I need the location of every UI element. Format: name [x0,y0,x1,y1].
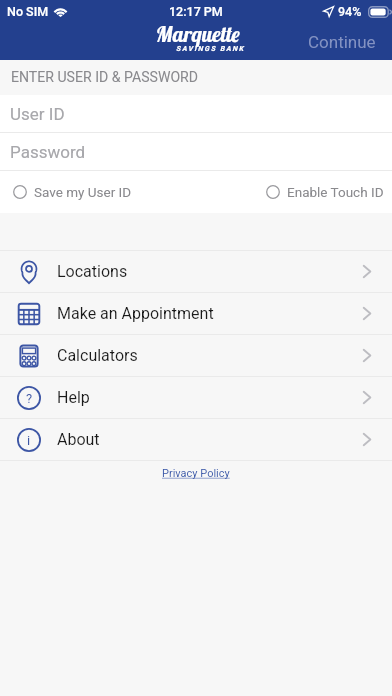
staticText: Make an Appointment [57,304,214,323]
staticText: Privacy Policy [162,467,230,480]
button[interactable]: ? [0,377,392,418]
staticText: 94% [338,4,362,19]
staticText: ENTER USER ID & PASSWORD [11,69,199,86]
button[interactable]: Continue [308,32,392,60]
staticText: i [27,433,31,448]
staticText: Marquette [156,21,240,47]
button[interactable]: User ID [0,95,392,132]
staticText: No SIM [7,4,49,19]
staticText: Continue [308,32,376,52]
staticText: Enable Touch ID [287,184,384,200]
staticText: ? [26,391,33,406]
button[interactable]: Save my User ID [0,184,140,200]
staticText: Locations [57,262,128,281]
button[interactable]: Password [0,133,392,170]
staticText: User ID [10,104,65,124]
button[interactable]: Enable Touch ID [258,184,392,200]
button[interactable]: Calculators [0,335,392,376]
button[interactable]: i [0,419,392,460]
staticText: Save my User ID [34,184,132,200]
staticText: SAVINGS BANK [176,45,245,53]
staticText: About [57,430,100,449]
button[interactable]: Locations [0,251,392,292]
staticText: Help [57,388,90,407]
staticText: Calculators [57,346,138,365]
staticText: 12:17 PM [169,4,223,19]
staticText: Password [10,142,86,162]
button[interactable]: Privacy Policy [156,464,236,483]
button[interactable]: Make an Appointment [0,293,392,334]
